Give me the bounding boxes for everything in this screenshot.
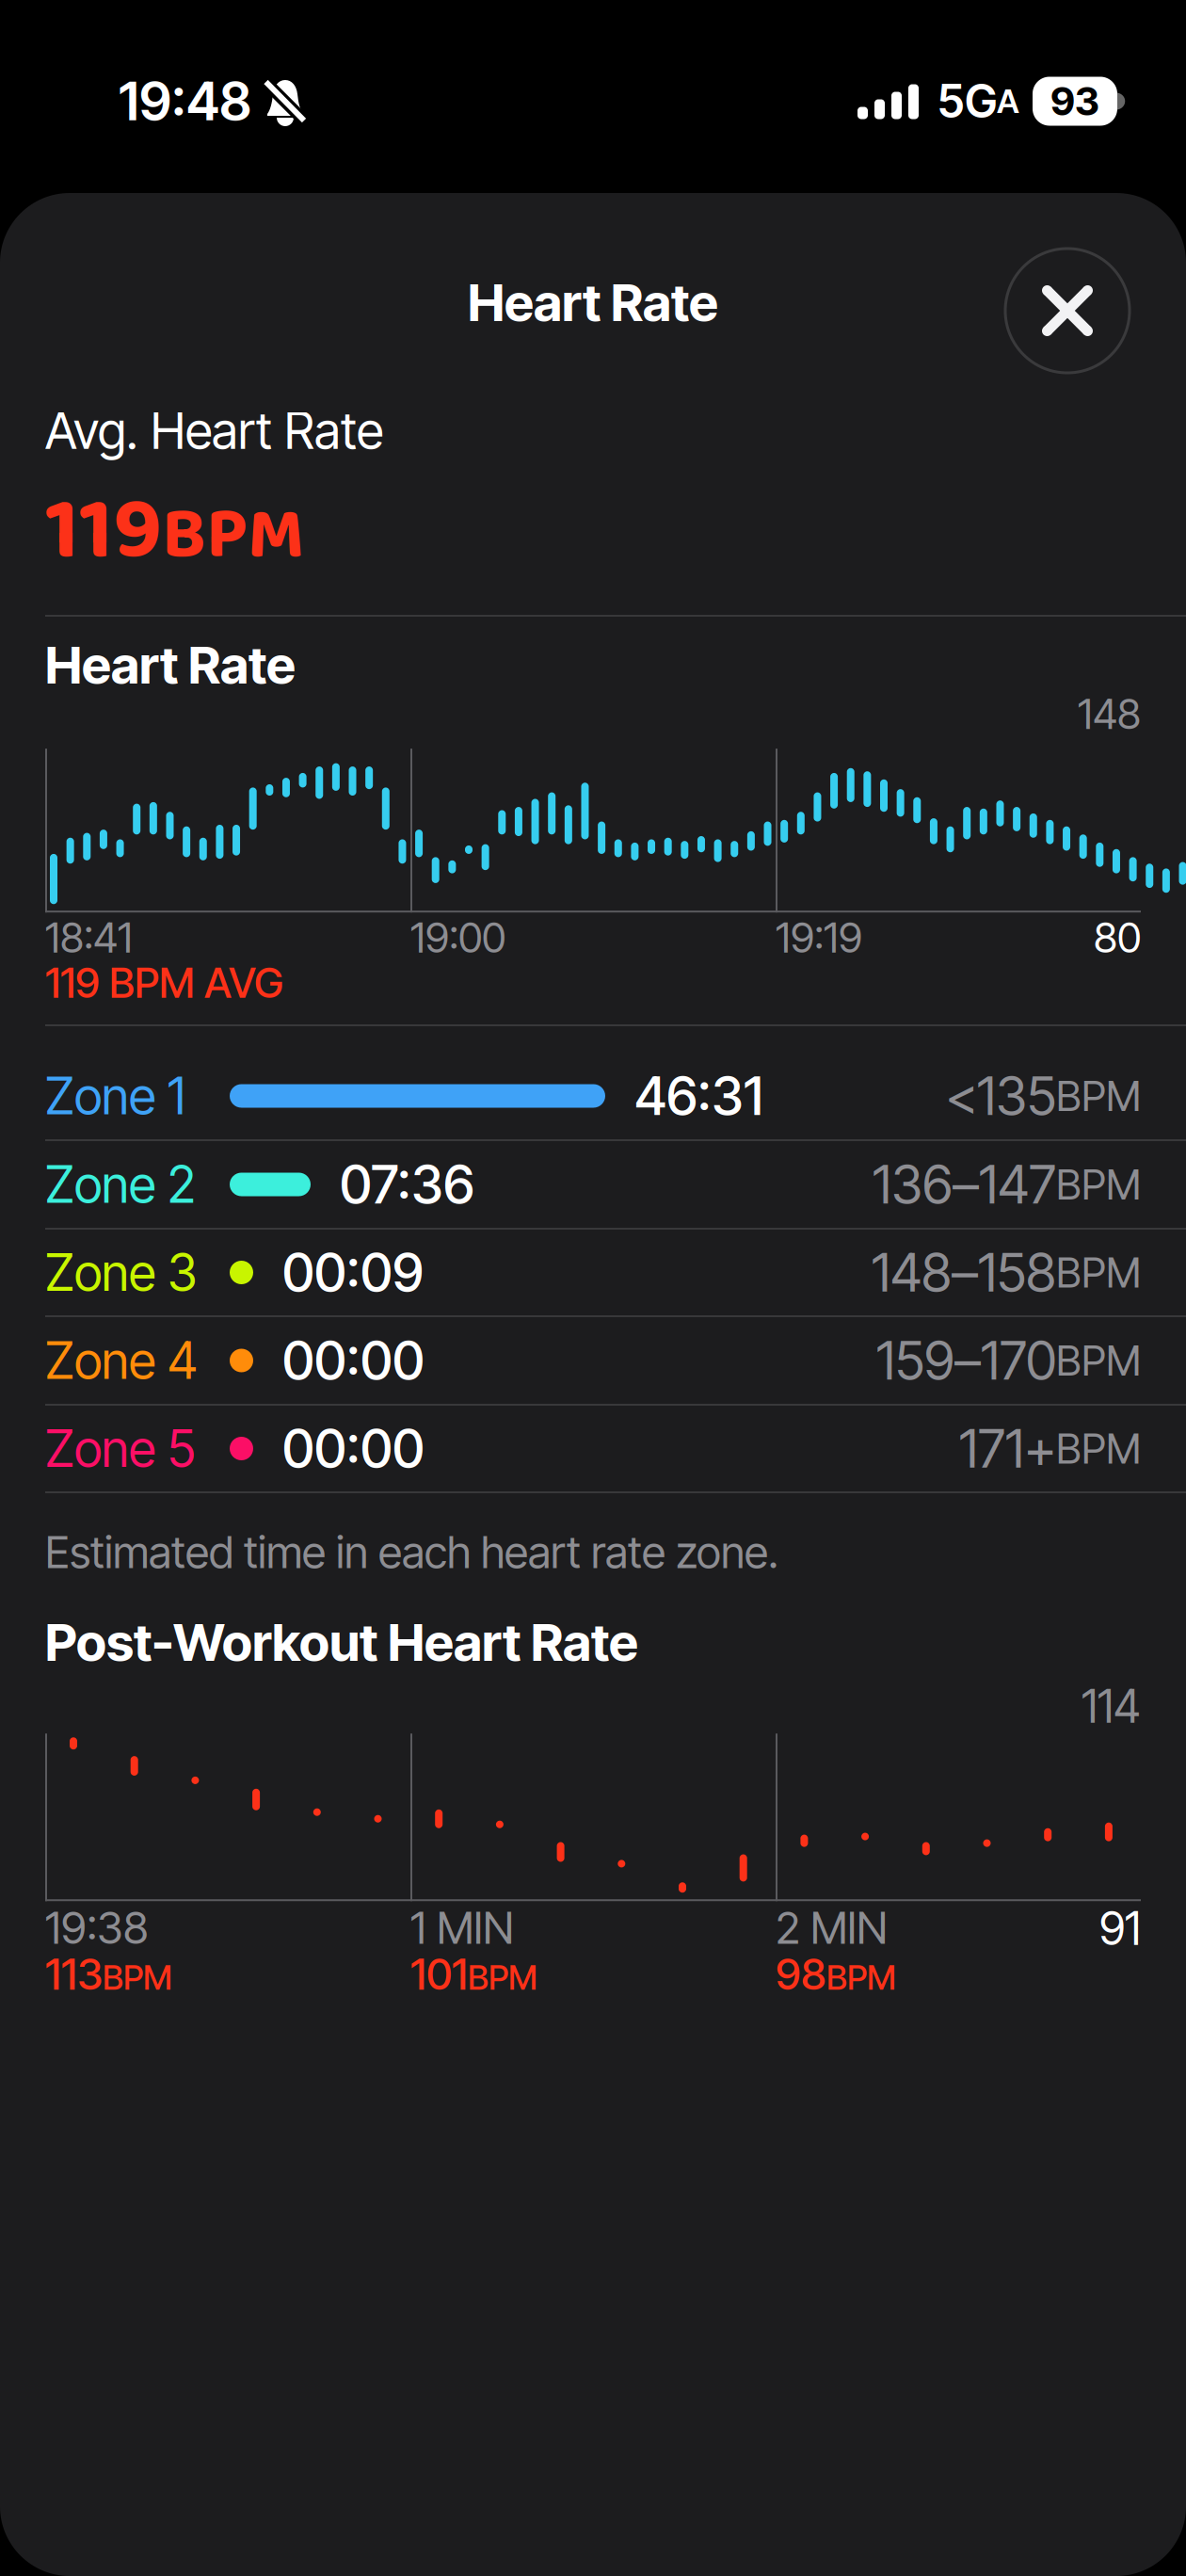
staticText: 46:31 (634, 1064, 763, 1128)
staticText: 119 BPM AVG (45, 958, 283, 1008)
staticText: 19:38 (45, 1901, 148, 1954)
button[interactable]: Zone 5 (0, 1406, 1186, 1491)
staticText: BPM (1056, 1423, 1141, 1474)
staticText: 159–170 (876, 1329, 1056, 1392)
staticText: BPM (1056, 1335, 1141, 1386)
button[interactable]: Close (1005, 249, 1130, 373)
staticText: Zone 4 (45, 1330, 198, 1391)
staticText: 1 MIN (410, 1901, 514, 1954)
button[interactable]: Zone 4 (0, 1317, 1186, 1404)
button[interactable]: Zone 1 (0, 1026, 1186, 1139)
staticText: Zone 5 (45, 1418, 196, 1479)
staticText: 136–147 (873, 1153, 1056, 1216)
staticText: Heart Rate (45, 634, 296, 696)
staticText: 148 (1078, 689, 1141, 739)
staticText: 80 (1094, 912, 1141, 963)
staticText: <135 (945, 1064, 1056, 1128)
staticText: BPM (1056, 1159, 1141, 1209)
staticText: 00:00 (282, 1329, 425, 1392)
staticText: BPM (826, 1957, 896, 1998)
staticText: 18:41 (45, 912, 133, 963)
staticText: Zone 2 (45, 1154, 196, 1215)
staticText: 101 (410, 1948, 468, 2000)
staticText: 114 (1082, 1679, 1141, 1734)
staticText: 07:36 (340, 1153, 474, 1216)
staticText: 2 MIN (776, 1901, 888, 1954)
staticText: 113 (45, 1948, 103, 2000)
staticText: BPM (468, 1957, 537, 1998)
staticText: 19:19 (776, 912, 862, 963)
staticText: 00:00 (282, 1417, 425, 1480)
staticText: Estimated time in each heart rate zone. (45, 1526, 778, 1579)
staticText: Avg. Heart Rate (45, 400, 383, 461)
staticText: BPM (1056, 1247, 1141, 1298)
staticText: A (997, 81, 1019, 121)
staticText: 91 (1099, 1901, 1141, 1956)
button[interactable]: Zone 3 (0, 1230, 1186, 1315)
staticText: 171+ (959, 1417, 1056, 1480)
staticText: 119 (45, 461, 162, 602)
staticText: BPM (162, 478, 304, 593)
staticText: 93 (1050, 78, 1099, 125)
staticText: 5G (938, 74, 997, 129)
staticText: 98 (776, 1948, 826, 2000)
staticText: 19:00 (410, 912, 505, 963)
staticText: BPM (1056, 1071, 1141, 1121)
staticText: Heart Rate (468, 271, 718, 333)
staticText: Zone 1 (45, 1066, 185, 1126)
staticText: Post-Workout Heart Rate (45, 1611, 638, 1673)
staticText: BPM (103, 1957, 172, 1998)
staticText: 148–158 (872, 1241, 1056, 1304)
staticText: Zone 3 (45, 1242, 197, 1303)
staticText: 19:48 (119, 69, 251, 133)
button[interactable]: Zone 2 (0, 1141, 1186, 1228)
staticText: 00:09 (282, 1241, 424, 1304)
